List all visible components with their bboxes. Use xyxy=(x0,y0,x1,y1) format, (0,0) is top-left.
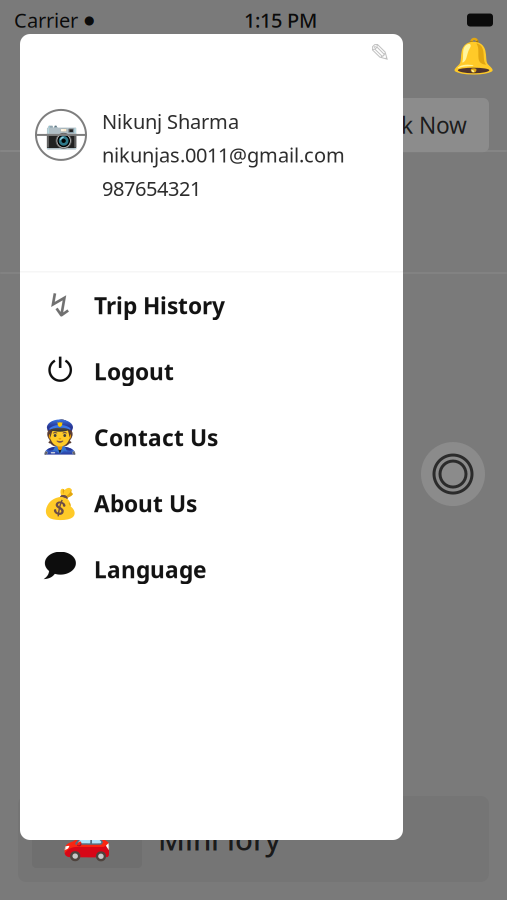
staticText: 987654321 xyxy=(102,175,201,202)
staticText: Trip History xyxy=(94,290,225,320)
staticText: Carrier xyxy=(14,7,78,33)
staticText: 💰 xyxy=(41,487,78,520)
staticText: 🗩 xyxy=(42,543,78,596)
staticText: ● xyxy=(84,13,94,27)
staticText: ↯ xyxy=(46,287,73,324)
button[interactable]: 🗩 xyxy=(20,536,403,602)
staticText: 1:15 PM xyxy=(244,7,317,33)
button[interactable]: ⏻ xyxy=(20,338,403,404)
staticText: Mini lory xyxy=(158,819,280,858)
staticText: 📷 xyxy=(44,120,77,150)
button[interactable]: 👮 xyxy=(20,404,403,470)
staticText: Book Now xyxy=(358,110,467,140)
staticText: 🚗 xyxy=(62,816,112,862)
staticText: Nikunj Sharma xyxy=(102,108,239,134)
staticText: ✎ xyxy=(369,39,390,67)
button[interactable]: Notifications xyxy=(451,34,495,78)
button[interactable]: ↯ xyxy=(20,272,403,338)
button[interactable]: Book Now xyxy=(336,98,489,152)
staticText: 🔔 xyxy=(451,36,494,76)
staticText: About Us xyxy=(94,488,197,518)
staticText: ⏻ xyxy=(47,356,72,387)
button[interactable]: Locate me xyxy=(421,442,485,506)
staticText: 👮 xyxy=(40,419,80,456)
button[interactable]: Edit profile xyxy=(365,38,395,68)
button[interactable]: 💰 xyxy=(20,470,403,536)
staticText: nikunjas.0011@gmail.com xyxy=(102,141,345,168)
staticText: Contact Us xyxy=(94,422,218,452)
staticText: Logout xyxy=(94,356,174,386)
button[interactable]: Change profile photo xyxy=(34,108,88,162)
staticText: Language xyxy=(94,554,207,584)
